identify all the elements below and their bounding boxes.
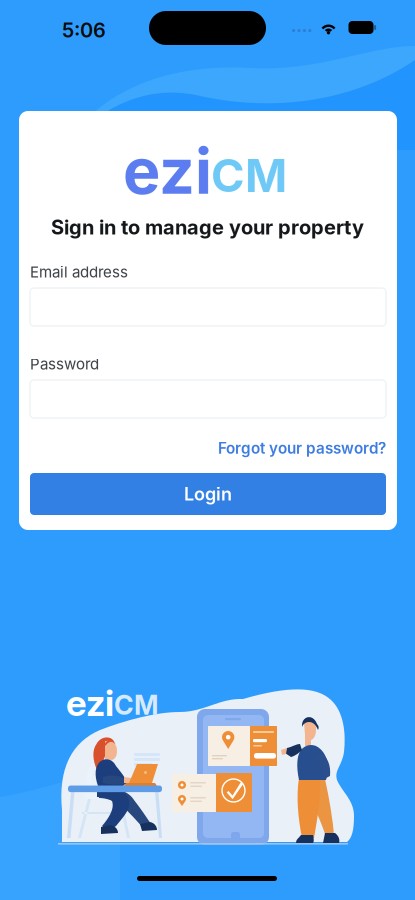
staticText: ezi	[123, 133, 212, 209]
staticText: Forgot your password?	[218, 439, 386, 457]
staticText: 5:06	[62, 18, 106, 42]
staticText: CM	[211, 148, 287, 203]
staticText: CM	[114, 689, 159, 721]
button[interactable]: Forgot your password?	[218, 439, 386, 457]
staticText: Password	[30, 355, 99, 373]
staticText: Email address	[30, 263, 128, 281]
staticText: Login	[184, 483, 232, 505]
staticText: Sign in to manage your property	[51, 215, 364, 239]
button[interactable]: Login	[30, 473, 386, 515]
staticText: ezi	[66, 681, 114, 725]
